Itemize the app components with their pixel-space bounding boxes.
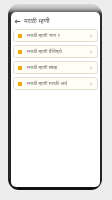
button[interactable]: Back — [13, 17, 22, 26]
staticText: मराठी म्हणी वैशिष्ट्ये — [27, 48, 62, 55]
button[interactable]: मराठी म्हणी भाग १ — [13, 29, 98, 42]
button[interactable]: मराठी म्हणी वैशिष्ट्ये — [13, 45, 98, 58]
button[interactable]: मराठी म्हणी संग्रह — [13, 61, 98, 74]
button[interactable]: मराठी म्हणी मराठी अर्थ — [13, 77, 98, 90]
staticText: मराठी म्हणी मराठी अर्थ — [27, 80, 68, 87]
staticText: मराठी म्हणी भाग १ — [27, 32, 60, 39]
staticText: मराठी म्हणी — [24, 17, 50, 25]
staticText: मराठी म्हणी संग्रह — [27, 64, 58, 71]
